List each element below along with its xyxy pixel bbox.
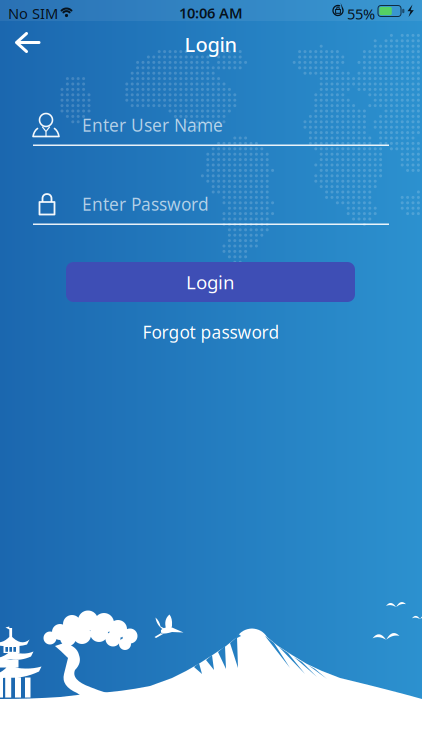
staticText: 55% (347, 4, 375, 23)
staticText: Forgot password (142, 320, 279, 343)
button[interactable]: Enter Password (33, 184, 389, 224)
staticText: Login (186, 270, 235, 294)
button[interactable]: Back (0, 0, 56, 64)
staticText: Login (184, 31, 237, 58)
button[interactable]: Enter User Name (33, 105, 389, 145)
staticText: No SIM (8, 3, 58, 23)
staticText: 10:06 AM (179, 3, 243, 22)
button[interactable]: Login (66, 262, 355, 302)
staticText: Enter User Name (82, 113, 223, 136)
staticText: Enter Password (82, 192, 209, 215)
button[interactable]: Forgot password (111, 320, 311, 344)
